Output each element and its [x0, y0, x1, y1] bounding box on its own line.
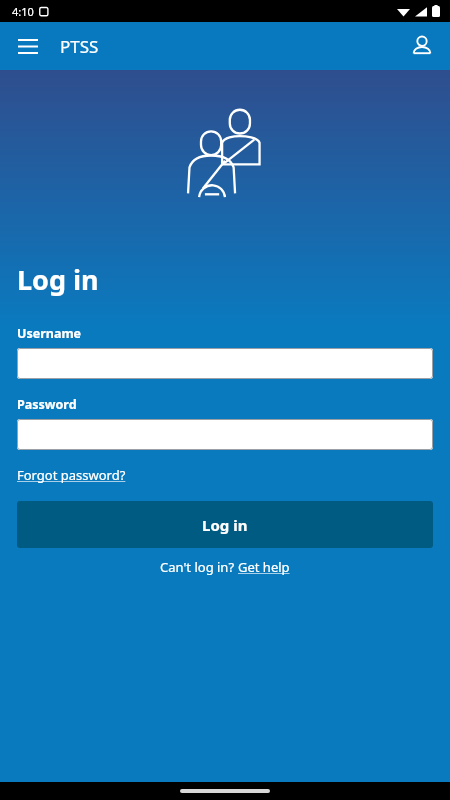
staticText: Username — [17, 325, 82, 342]
button[interactable]: Get help — [238, 558, 290, 576]
button[interactable]: Forgot password? — [17, 466, 126, 484]
staticText: Log in — [202, 515, 248, 535]
button[interactable]: Open navigation menu — [8, 26, 48, 66]
staticText: Can't log in? — [160, 558, 238, 576]
staticText: Get help — [238, 558, 290, 576]
button[interactable] — [17, 419, 433, 450]
button[interactable]: Log in — [17, 501, 433, 548]
button[interactable]: Account — [402, 26, 442, 66]
staticText: PTSS — [60, 35, 99, 58]
staticText: 4:10 — [12, 4, 34, 19]
staticText: Password — [17, 396, 77, 413]
staticText: Forgot password? — [17, 466, 126, 484]
button[interactable] — [17, 348, 433, 379]
staticText: Log in — [17, 261, 99, 298]
